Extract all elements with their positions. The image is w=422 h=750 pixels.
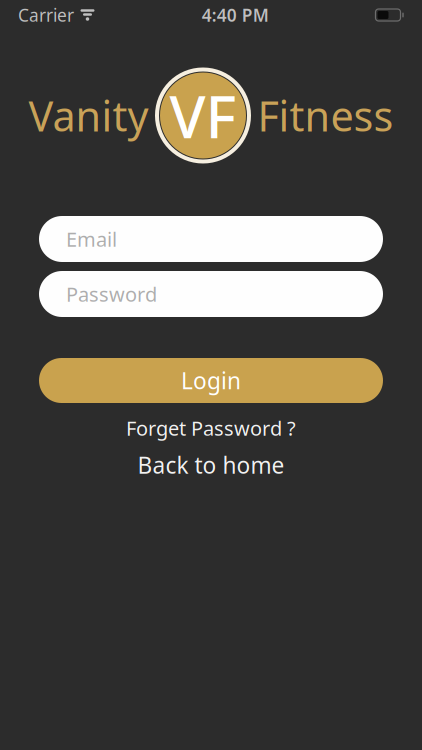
staticText: Back to home [137,450,284,480]
staticText: 4:40 PM [202,3,269,26]
button[interactable]: Password [39,271,383,317]
staticText: Carrier [18,3,74,26]
staticText: Fitness [257,88,393,143]
staticText: Login [181,365,241,395]
button[interactable]: Login [39,358,383,403]
staticText: Forget Password ? [126,415,296,441]
staticText: Email [66,226,117,252]
button[interactable]: Forget Password ? [39,415,383,441]
staticText: VF [169,76,236,154]
staticText: Password [66,281,157,307]
staticText: Vanity [28,88,148,143]
button[interactable]: Back to home [39,452,383,478]
button[interactable]: Email [39,216,383,262]
